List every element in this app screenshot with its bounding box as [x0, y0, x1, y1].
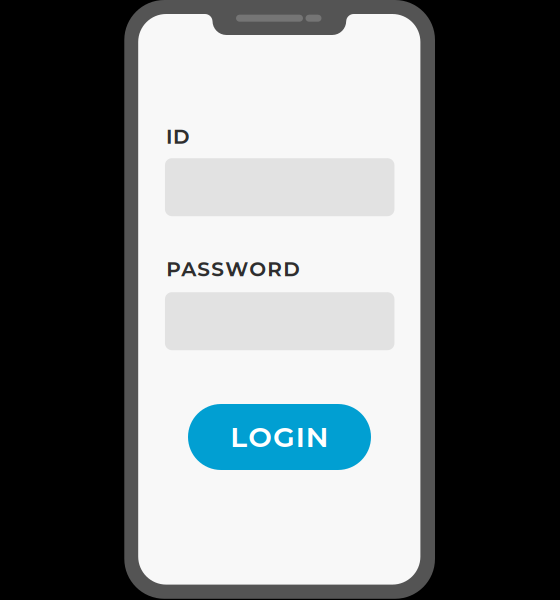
- staticText: ID: [166, 124, 190, 149]
- button[interactable]: LOGIN: [188, 404, 371, 470]
- staticText: LOGIN: [230, 420, 329, 454]
- staticText: PASSWORD: [166, 257, 300, 281]
